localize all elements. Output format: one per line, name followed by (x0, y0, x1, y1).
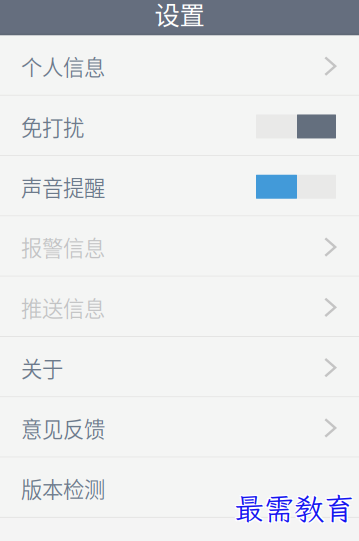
button[interactable]: 报警信息 (0, 216, 359, 276)
staticText: 个人信息 (21, 51, 105, 82)
staticText: 意见反馈 (21, 412, 105, 443)
staticText: 推送信息 (21, 292, 105, 323)
staticText: 报警信息 (21, 232, 105, 262)
button[interactable]: 声音提醒 (0, 156, 359, 215)
staticText: 最需教育 (234, 488, 354, 528)
button[interactable]: 推送信息 (0, 277, 359, 336)
staticText: 设置 (154, 0, 204, 32)
staticText: 关于 (21, 352, 63, 383)
staticText: 最需教育 (233, 490, 353, 529)
staticText: 最需教育 (235, 487, 355, 527)
button[interactable]: 免打扰 (0, 96, 359, 155)
staticText: 版本检测 (21, 473, 105, 504)
staticText: 免打扰 (21, 111, 84, 142)
button[interactable]: 版本检测 (0, 458, 359, 517)
staticText: 最需教育 (235, 490, 355, 529)
button[interactable]: 关于 (0, 337, 359, 396)
button[interactable]: 意见反馈 (0, 397, 359, 457)
staticText: 最需教育 (233, 487, 353, 527)
button[interactable]: 个人信息 (0, 35, 359, 95)
staticText: 声音提醒 (21, 171, 105, 202)
